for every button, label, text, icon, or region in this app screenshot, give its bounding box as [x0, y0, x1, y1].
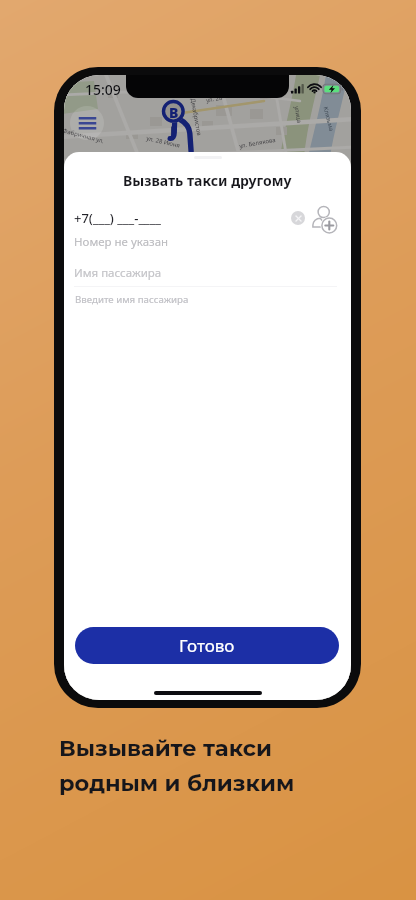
- staticText: +7(___) ___-____: [74, 209, 161, 227]
- staticText: Вызвать такси другому: [123, 171, 292, 190]
- staticText: Фабричная ул.: [64, 127, 105, 145]
- staticText: Имя пассажира: [74, 265, 162, 281]
- staticText: ул. 28 Июня: [145, 134, 181, 150]
- staticText: ул. Белякова: [239, 136, 276, 150]
- staticText: В: [169, 103, 179, 122]
- staticText: Вызывайте такси: [59, 734, 273, 761]
- staticText: Введите имя пассажира: [75, 293, 189, 306]
- button[interactable]: Menu: [70, 106, 104, 140]
- staticText: 15:09: [85, 80, 121, 99]
- staticText: Декабристов: [189, 98, 203, 136]
- staticText: Готово: [179, 634, 235, 657]
- staticText: улица: [292, 105, 303, 124]
- staticText: Клязьма: [322, 106, 335, 132]
- button[interactable]: Готово: [75, 627, 339, 664]
- staticText: родным и близким: [59, 769, 295, 796]
- button[interactable]: Add contact: [308, 198, 340, 230]
- staticText: Номер не указан: [74, 234, 169, 250]
- button[interactable]: Clear: [291, 211, 305, 225]
- staticText: ул. 28: [205, 94, 223, 104]
